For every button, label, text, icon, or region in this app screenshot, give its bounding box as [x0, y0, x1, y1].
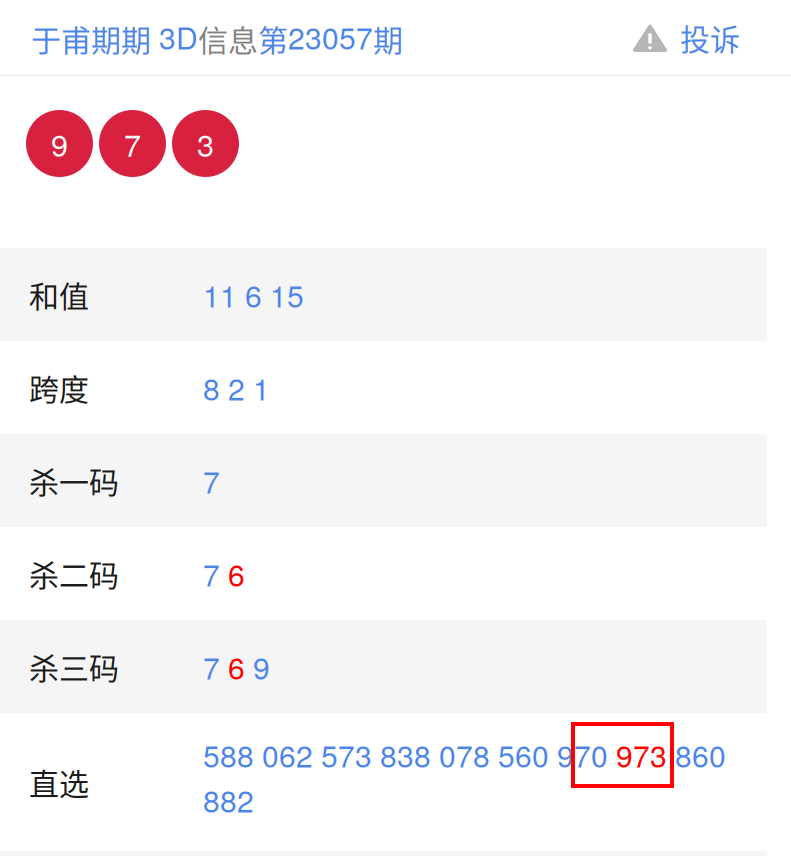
staticText: 7 6 — [203, 552, 245, 595]
staticText: 和值 — [29, 273, 89, 316]
staticText: 直选 — [29, 760, 89, 804]
staticText: 于甫期期 3D信息第23057期 — [31, 15, 403, 60]
staticText: 跨度 — [29, 366, 89, 409]
staticText: 投诉 — [680, 16, 740, 59]
staticText: 588 062 573 838 078 560 970 973 860 — [203, 733, 726, 776]
staticText: 7 6 9 — [203, 645, 270, 688]
staticText: 7 — [203, 459, 220, 502]
staticText: 9 — [51, 121, 68, 165]
staticText: 8 2 1 — [203, 366, 270, 409]
staticText: 11 6 15 — [203, 273, 304, 316]
staticText: 杀二码 — [29, 552, 119, 595]
staticText: 杀一码 — [29, 459, 119, 502]
staticText: 杀三码 — [29, 645, 119, 688]
staticText: 3 — [197, 121, 214, 165]
staticText: 882 — [203, 778, 254, 821]
staticText: 7 — [124, 121, 141, 165]
button[interactable]: 投诉 — [631, 16, 740, 59]
